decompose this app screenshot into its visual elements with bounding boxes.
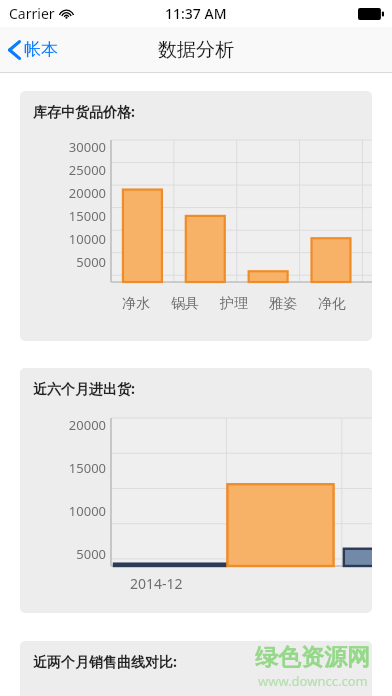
staticText: 净水	[122, 295, 150, 313]
staticText: 近六个月进出货:	[33, 379, 135, 398]
staticText: 15000	[50, 207, 106, 225]
staticText: 20000	[50, 416, 106, 434]
staticText: 库存中货品价格:	[33, 102, 135, 121]
staticText: 数据分析	[158, 38, 234, 62]
staticText: 11:37 AM	[165, 4, 227, 23]
staticText: 帐本	[24, 39, 58, 60]
staticText: Carrier	[9, 4, 55, 23]
staticText: 20000	[50, 184, 106, 202]
button[interactable]: 近两个月销售曲线对比:	[20, 641, 372, 696]
staticText: 5000	[50, 545, 106, 563]
staticText: 10000	[50, 502, 106, 520]
staticText: 2014-12	[130, 574, 183, 593]
staticText: 30000	[50, 138, 106, 156]
staticText: 25000	[50, 161, 106, 179]
staticText: 护理	[220, 295, 248, 313]
staticText: 净化	[318, 295, 346, 313]
staticText: 雅姿	[269, 295, 297, 313]
staticText: 近两个月销售曲线对比:	[33, 652, 177, 671]
button[interactable]: 近六个月进出货:	[20, 368, 372, 613]
button[interactable]: 帐本	[0, 27, 68, 72]
staticText: 10000	[50, 230, 106, 248]
staticText: 绿色资源网	[255, 643, 370, 672]
staticText: 锅具	[171, 295, 199, 313]
staticText: www.downcc.com	[258, 672, 368, 690]
staticText: 5000	[50, 253, 106, 271]
staticText: 15000	[50, 459, 106, 477]
button[interactable]: 库存中货品价格:	[20, 91, 372, 341]
